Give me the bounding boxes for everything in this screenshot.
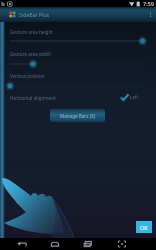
- button[interactable]: Gesture area width: [0, 59, 156, 69]
- staticText: 7:59: [143, 0, 154, 7]
- staticText: Vertical position: [10, 73, 45, 79]
- staticText: OK: [140, 224, 148, 231]
- button[interactable]: Manage Bars (3): [50, 109, 105, 122]
- button[interactable]: OK: [136, 221, 152, 233]
- staticText: Left: [130, 94, 139, 100]
- button[interactable]: Fullscreen: [111, 238, 133, 250]
- button[interactable]: Back: [11, 238, 33, 250]
- staticText: Gesture area height: [10, 29, 53, 35]
- button[interactable]: More options: [144, 7, 156, 22]
- button[interactable]: Recent apps: [77, 238, 99, 250]
- staticText: SideBar Plus: [19, 11, 50, 18]
- staticText: Manage Bars (3): [60, 113, 96, 119]
- staticText: Gesture area width: [10, 51, 52, 57]
- button[interactable]: Home: [44, 238, 66, 250]
- button[interactable]: Gesture area height: [0, 36, 156, 46]
- button[interactable]: Left: [120, 92, 139, 102]
- staticText: Horizontal alignment: [10, 95, 56, 101]
- button[interactable]: Vertical position: [0, 81, 156, 91]
